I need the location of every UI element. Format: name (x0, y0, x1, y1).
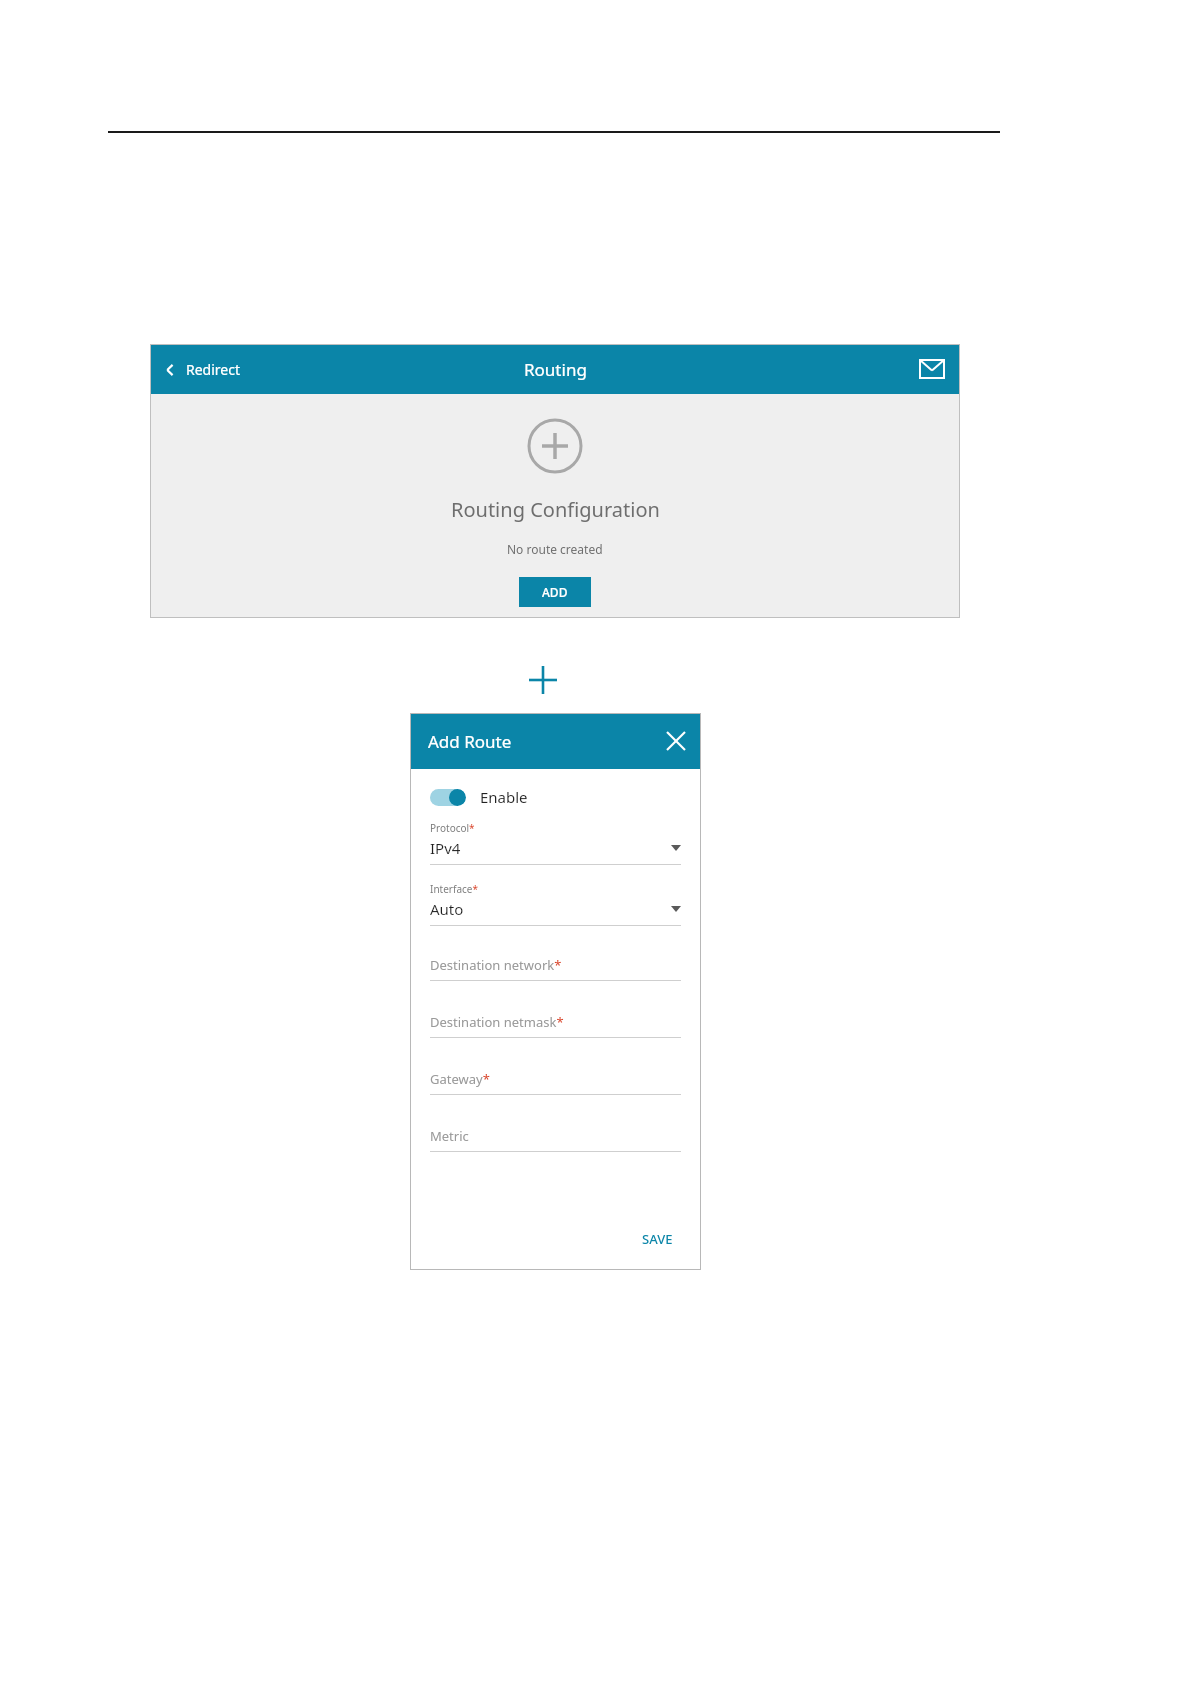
button[interactable]: Destination network* (430, 956, 681, 981)
staticText: Metric (430, 1127, 469, 1145)
button[interactable]: Metric (430, 1127, 681, 1152)
staticText: Redirect (186, 360, 240, 379)
staticText: Protocol* (430, 821, 475, 835)
staticText: Auto (430, 899, 464, 919)
staticText: ADD (542, 584, 568, 600)
staticText: Routing Configuration (451, 496, 660, 523)
button[interactable]: IPv4 (430, 838, 681, 858)
staticText: Add Route (428, 730, 512, 753)
button[interactable]: ADD (519, 577, 591, 607)
staticText: Gateway* (430, 1070, 490, 1088)
button[interactable]: Enable (430, 787, 528, 807)
button[interactable]: Gateway* (430, 1070, 681, 1095)
staticText: SAVE (642, 1230, 673, 1248)
button[interactable]: Close (651, 718, 701, 764)
button[interactable]: Destination netmask* (430, 1013, 681, 1038)
button[interactable]: Redirect (150, 352, 252, 387)
staticText: Destination netmask* (430, 1013, 564, 1031)
staticText: Enable (480, 787, 528, 807)
staticText: IPv4 (430, 838, 461, 858)
button[interactable]: SAVE (636, 1224, 679, 1254)
button[interactable]: Auto (430, 899, 681, 919)
button[interactable]: Messages (904, 350, 960, 388)
staticText: Destination network* (430, 956, 562, 974)
staticText: No route created (507, 541, 603, 557)
staticText: Routing (524, 358, 587, 381)
staticText: Interface* (430, 882, 478, 896)
